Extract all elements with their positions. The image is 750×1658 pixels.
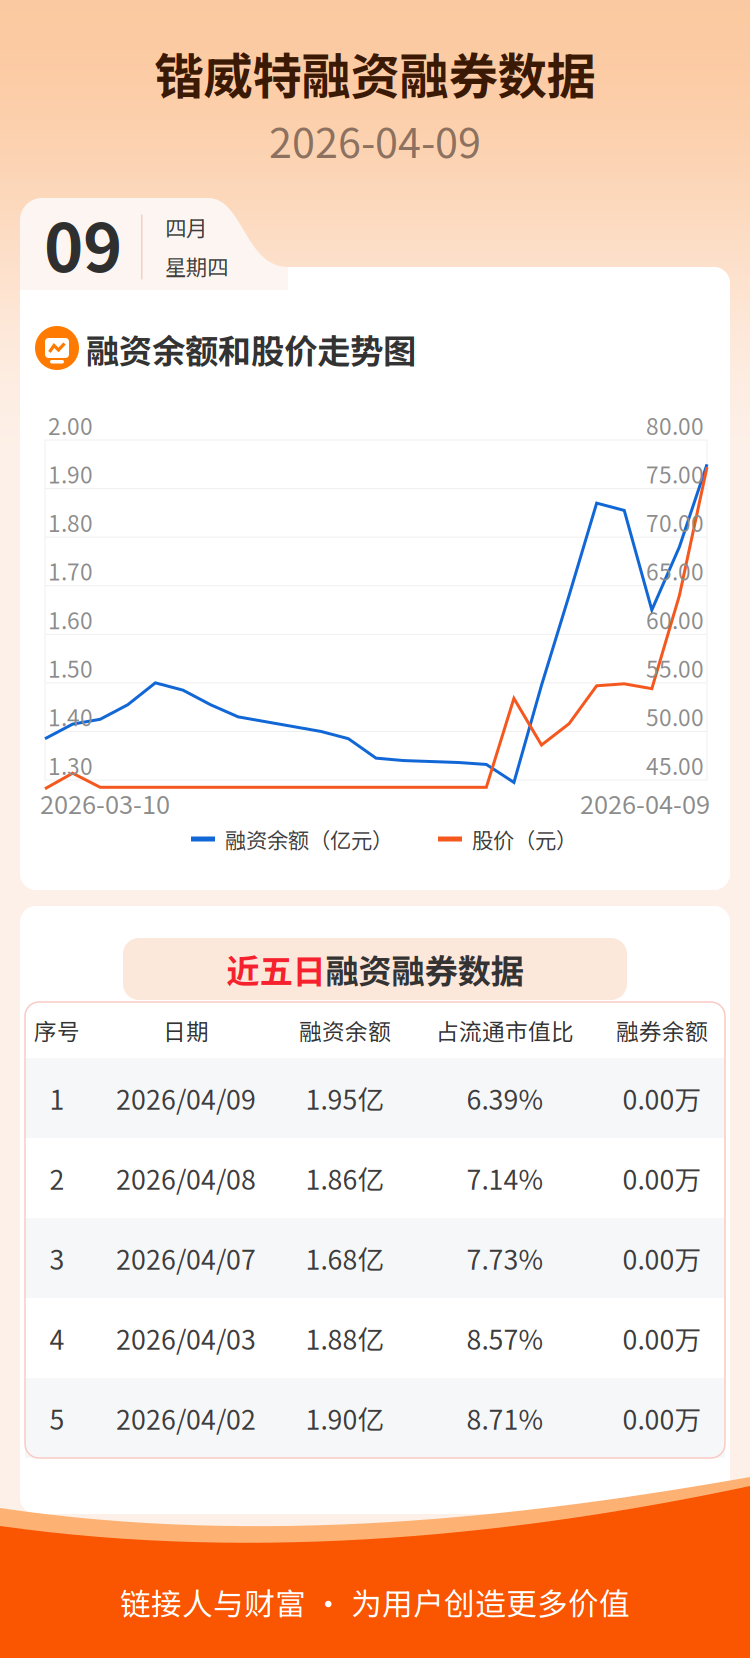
- staticText: 1.88亿: [305, 1319, 384, 1357]
- staticText: 2: [49, 1159, 64, 1197]
- staticText: 60.00: [646, 603, 704, 636]
- staticText: 1.80: [48, 506, 93, 538]
- staticText: 2.00: [48, 409, 93, 441]
- staticText: 45.00: [646, 749, 704, 781]
- staticText: 50.00: [646, 700, 704, 733]
- staticText: 0.00万: [622, 1239, 701, 1277]
- staticText: 占流通市值比: [436, 1014, 574, 1046]
- staticText: 星期四: [165, 251, 228, 281]
- staticText: 融资融券数据: [325, 945, 523, 993]
- staticText: 3: [49, 1239, 64, 1277]
- staticText: 融券余额: [616, 1014, 708, 1046]
- staticText: 1.90: [48, 457, 93, 490]
- staticText: 4: [49, 1319, 64, 1357]
- staticText: 日期: [163, 1014, 209, 1046]
- staticText: 锴威特融资融券数据: [154, 37, 595, 109]
- staticText: 0.00万: [622, 1079, 701, 1117]
- staticText: 2026-04-09: [269, 110, 481, 170]
- staticText: 1.68亿: [305, 1239, 384, 1277]
- staticText: 6.39%: [466, 1079, 543, 1117]
- staticText: 0.00万: [622, 1319, 701, 1357]
- staticText: 2026/04/07: [116, 1239, 256, 1277]
- staticText: 0.00万: [622, 1159, 701, 1197]
- staticText: 2026-04-09: [580, 785, 710, 821]
- staticText: 融资余额和股价走势图: [86, 325, 416, 373]
- staticText: 2026/04/08: [116, 1159, 256, 1197]
- staticText: 5: [49, 1399, 64, 1437]
- staticText: 融资余额: [299, 1014, 391, 1046]
- staticText: 2026/04/02: [116, 1399, 256, 1437]
- staticText: 55.00: [646, 651, 704, 684]
- staticText: 7.14%: [466, 1159, 543, 1197]
- staticText: 近五日: [226, 945, 325, 993]
- staticText: 1: [49, 1079, 64, 1117]
- staticText: 8.71%: [466, 1399, 543, 1437]
- staticText: 0.00万: [622, 1399, 701, 1437]
- staticText: 序号: [34, 1014, 80, 1046]
- staticText: 2026/04/09: [116, 1079, 256, 1117]
- staticText: 2026-03-10: [40, 785, 170, 821]
- staticText: 链接人与财富 · 为用户创造更多价值: [120, 1580, 630, 1624]
- staticText: 2026/04/03: [116, 1319, 256, 1357]
- staticText: 65.00: [646, 554, 704, 587]
- staticText: 1.50: [48, 651, 93, 684]
- staticText: 融资余额（亿元）: [225, 824, 393, 854]
- staticText: 股价（元）: [472, 824, 577, 854]
- staticText: 1.86亿: [305, 1159, 384, 1197]
- staticText: 四月: [165, 212, 207, 242]
- staticText: 75.00: [646, 457, 704, 490]
- staticText: 1.95亿: [305, 1079, 384, 1117]
- staticText: 09: [44, 195, 122, 291]
- staticText: 7.73%: [466, 1239, 543, 1277]
- staticText: 70.00: [646, 506, 704, 538]
- staticText: 1.90亿: [305, 1399, 384, 1437]
- staticText: 1.40: [48, 700, 93, 733]
- staticText: 80.00: [646, 409, 704, 441]
- staticText: 8.57%: [466, 1319, 543, 1357]
- staticText: 1.60: [48, 603, 93, 636]
- staticText: 1.30: [48, 749, 93, 781]
- staticText: 1.70: [48, 554, 93, 587]
